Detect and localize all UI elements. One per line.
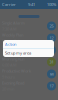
- button[interactable]: Morning Run: [0, 56, 58, 68]
- staticText: 9:41: [28, 2, 35, 7]
- staticText: Mon – Fri: [2, 38, 19, 44]
- staticText: Every day: [2, 50, 19, 56]
- staticText: 17: [49, 83, 53, 89]
- button[interactable]: Productive Work: [0, 68, 58, 80]
- button[interactable]: Evening Read: [0, 80, 58, 92]
- staticText: Carrier: [2, 2, 16, 7]
- staticText: 31: [49, 59, 53, 65]
- staticText: 44: [49, 71, 53, 77]
- staticText: 08: [49, 47, 53, 53]
- staticText: Action: [5, 41, 16, 47]
- button[interactable]: Daily Check: [0, 44, 58, 56]
- staticText: Morning Run: [2, 56, 24, 62]
- staticText: Daily Check: [2, 44, 23, 50]
- staticText: Set up my area: [5, 50, 31, 56]
- staticText: 25: [49, 23, 53, 29]
- button[interactable]: [18, 15, 39, 18]
- staticText: 100%: [47, 2, 56, 7]
- button[interactable]: Single Alarm: [0, 20, 58, 32]
- staticText: 12: [49, 35, 53, 41]
- button[interactable]: Weekly Plan: [0, 32, 58, 44]
